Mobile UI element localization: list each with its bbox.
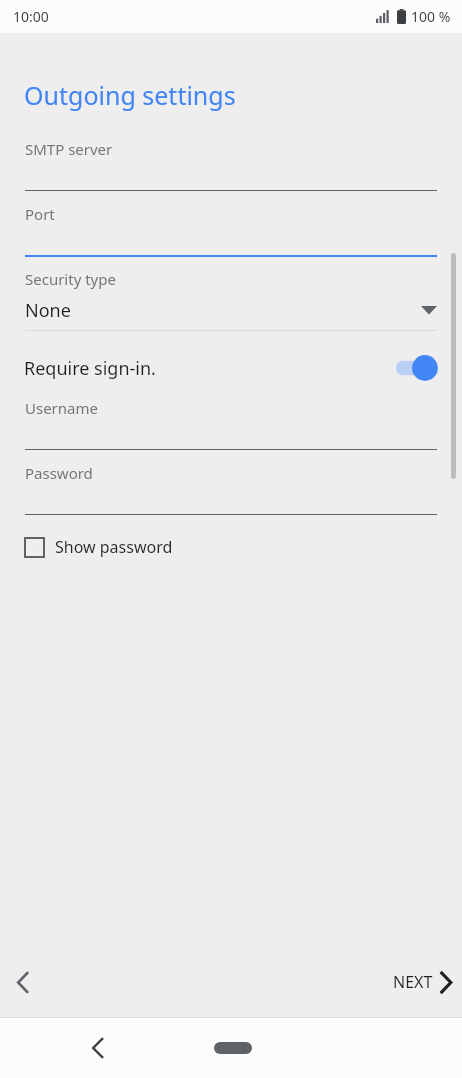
button[interactable]: Back: [76, 1026, 120, 1070]
button[interactable]: Port: [0, 204, 462, 257]
staticText: Port: [25, 204, 55, 224]
staticText: NEXT: [393, 971, 433, 993]
button[interactable]: Require sign-in.: [0, 348, 462, 388]
button[interactable]: Security type: [0, 269, 462, 331]
button[interactable]: Home: [213, 1036, 253, 1060]
staticText: Password: [25, 463, 93, 483]
button[interactable]: Back: [0, 959, 46, 1005]
button[interactable]: Password: [0, 463, 462, 515]
staticText: Security type: [25, 269, 116, 289]
button[interactable]: NEXT: [377, 961, 462, 1003]
button[interactable]: Show password: [0, 532, 185, 562]
button[interactable]: SMTP server: [0, 139, 462, 191]
button[interactable]: Require sign-in toggle: [396, 354, 440, 382]
staticText: Outgoing settings: [24, 78, 236, 112]
staticText: Require sign-in.: [24, 356, 156, 381]
button[interactable]: Username: [0, 398, 462, 450]
staticText: SMTP server: [25, 139, 113, 159]
staticText: 10:00: [13, 7, 49, 26]
staticText: Show password: [55, 536, 173, 558]
staticText: 100 %: [411, 7, 451, 26]
staticText: Username: [25, 398, 98, 418]
staticText: None: [25, 298, 71, 323]
